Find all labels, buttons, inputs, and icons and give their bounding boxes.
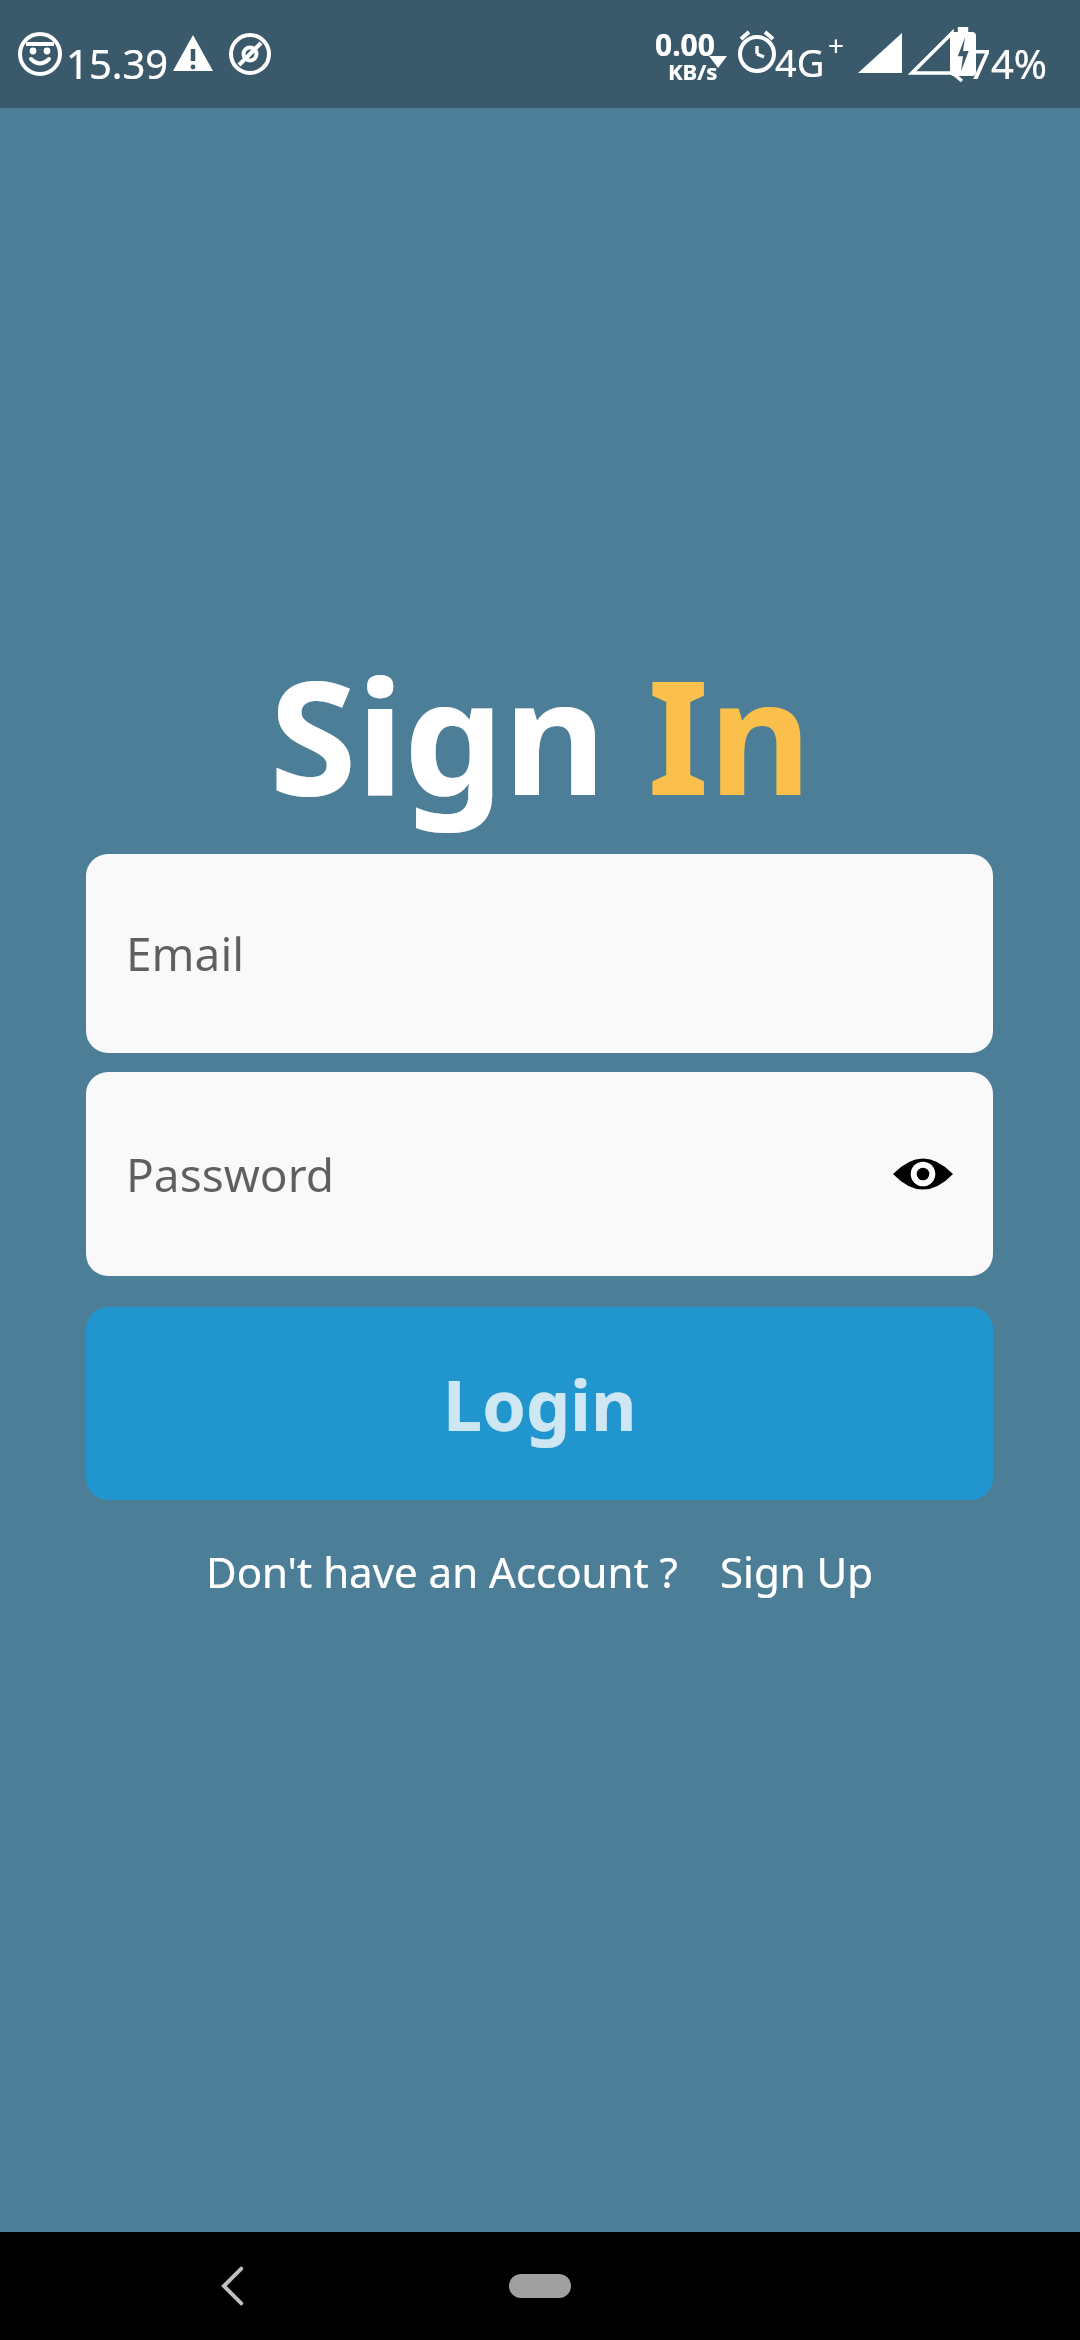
button[interactable]: Back bbox=[185, 2238, 281, 2334]
button[interactable]: Home bbox=[509, 2274, 571, 2298]
staticText: KB/s bbox=[668, 56, 718, 86]
staticText: Password bbox=[126, 1143, 335, 1206]
button[interactable]: Sign Up bbox=[720, 1543, 874, 1600]
staticText: 15.39 bbox=[66, 36, 169, 90]
button[interactable]: Email bbox=[86, 854, 993, 1053]
staticText: 0.00 bbox=[655, 24, 715, 65]
staticText: 74% bbox=[968, 36, 1047, 90]
button[interactable]: Password bbox=[86, 1072, 993, 1276]
staticText: Sign In bbox=[269, 626, 812, 841]
staticText: Email bbox=[126, 922, 245, 985]
staticText: + bbox=[828, 26, 845, 64]
staticText: Don't have an Account ? bbox=[206, 1543, 678, 1600]
button[interactable]: Login bbox=[86, 1307, 993, 1500]
staticText: Login bbox=[443, 1356, 637, 1451]
staticText: Sign Up bbox=[720, 1543, 874, 1600]
button[interactable]: Show password bbox=[883, 1134, 963, 1214]
staticText: 4G bbox=[775, 36, 825, 88]
